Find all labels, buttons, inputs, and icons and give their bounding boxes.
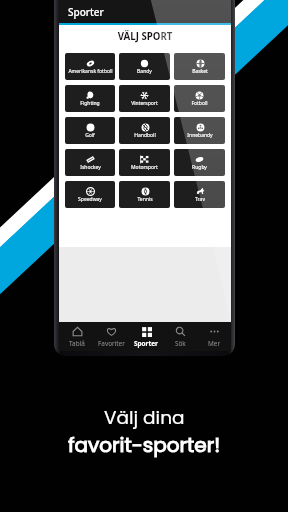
staticText: Golf (85, 132, 95, 139)
staticText: Motorsport (131, 164, 158, 171)
staticText: Fighting (80, 100, 100, 107)
staticText: Basket (192, 68, 208, 75)
button[interactable]: Sök (163, 322, 197, 351)
staticText: favorit-sporter! (68, 431, 221, 459)
staticText: Sporter (134, 339, 158, 348)
staticText: Sporter (68, 5, 104, 19)
button[interactable]: Fighting (65, 85, 115, 112)
button[interactable]: Amerikansk fotboll (65, 53, 115, 80)
staticText: Favoriter (98, 339, 125, 348)
button[interactable]: Mer (197, 322, 231, 351)
button[interactable]: Rugby (174, 149, 225, 176)
button[interactable]: Motorsport (119, 149, 170, 176)
button[interactable]: Ishockey (65, 149, 115, 176)
staticText: Sök (175, 339, 186, 348)
button[interactable]: Handboll (119, 117, 170, 144)
staticText: VÄLJ SPORT (59, 30, 231, 43)
staticText: Handboll (134, 132, 156, 139)
staticText: Fotboll (191, 100, 208, 107)
staticText: Vintersport (131, 100, 158, 107)
button[interactable]: Golf (65, 117, 115, 144)
button[interactable]: Tablå (59, 322, 94, 351)
button[interactable]: Sporter (129, 322, 163, 351)
staticText: Tennis (137, 196, 153, 203)
staticText: Trav (195, 196, 205, 203)
staticText: Mer (208, 339, 221, 348)
staticText: Ishockey (80, 164, 101, 171)
button[interactable]: Vintersport (119, 85, 170, 112)
button[interactable]: Tennis (119, 181, 170, 208)
button[interactable]: Favoriter (94, 322, 129, 351)
button[interactable]: Speedway (65, 181, 115, 208)
button[interactable]: Innebandy (174, 117, 225, 144)
button[interactable]: Bandy (119, 53, 170, 80)
staticText: Speedway (78, 196, 102, 203)
staticText: Amerikansk fotboll (68, 68, 113, 75)
button[interactable]: Trav (174, 181, 225, 208)
staticText: Välj dina (104, 405, 185, 431)
staticText: Rugby (192, 164, 207, 171)
staticText: Tablå (69, 339, 85, 348)
button[interactable]: Basket (174, 53, 225, 80)
staticText: Innebandy (187, 132, 213, 139)
button[interactable]: Fotboll (174, 85, 225, 112)
staticText: Bandy (137, 68, 152, 75)
